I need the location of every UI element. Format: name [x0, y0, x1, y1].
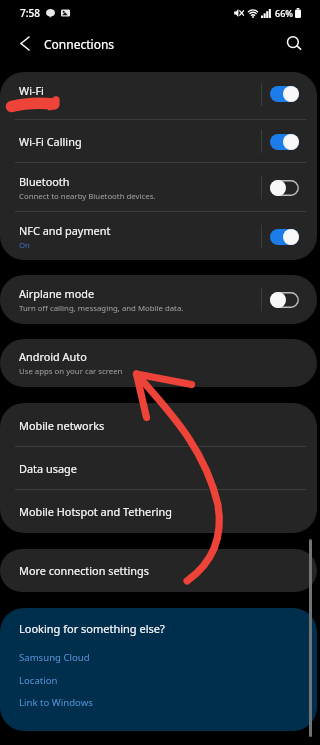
button[interactable]: Back	[8, 26, 42, 60]
staticText: Mobile Hotspot and Tethering	[19, 504, 172, 519]
button[interactable]: Mobile networks	[0, 403, 317, 447]
button[interactable]: Link to Windows	[19, 696, 93, 709]
staticText: Looking for something else?	[19, 621, 165, 636]
button[interactable]: Search	[278, 27, 310, 59]
button[interactable]: Wi-Fi Calling	[0, 120, 317, 163]
button[interactable]: Location	[19, 674, 58, 687]
staticText: Link to Windows	[19, 696, 93, 709]
staticText: Data usage	[19, 461, 77, 476]
staticText: Connect to nearby Bluetooth devices.	[19, 191, 156, 202]
button[interactable]: Bluetooth	[0, 163, 317, 212]
staticText: Samsung Cloud	[19, 651, 90, 664]
staticText: 7:58	[20, 6, 40, 20]
button[interactable]: Android Auto	[0, 339, 317, 387]
button[interactable]: Wi-Fi on	[270, 86, 299, 102]
staticText: Android Auto	[19, 349, 87, 364]
button[interactable]: Wi-Fi Calling on	[270, 134, 299, 150]
staticText: Wi-Fi Calling	[19, 134, 82, 149]
button[interactable]: Samsung Cloud	[19, 651, 90, 664]
staticText: 66%	[275, 7, 293, 19]
button[interactable]: Mobile Hotspot and Tethering	[0, 490, 317, 533]
button[interactable]: Data usage	[0, 447, 317, 490]
staticText: Use apps on your car screen	[19, 366, 123, 377]
button[interactable]: More connection settings	[0, 549, 317, 592]
button[interactable]: Airplane mode off	[270, 292, 299, 308]
staticText: NFC and payment	[19, 223, 111, 238]
staticText: Bluetooth	[19, 174, 70, 189]
staticText: On	[19, 240, 30, 251]
button[interactable]: Bluetooth off	[270, 180, 299, 196]
staticText: Turn off calling, messaging, and Mobile …	[19, 303, 184, 314]
staticText: Location	[19, 674, 58, 687]
staticText: Airplane mode	[19, 286, 95, 301]
staticText: Mobile networks	[19, 418, 105, 433]
staticText: More connection settings	[19, 563, 149, 578]
staticText: Connections	[44, 36, 115, 52]
staticText: Wi-Fi	[19, 83, 44, 98]
button[interactable]: Airplane mode	[0, 275, 317, 324]
button[interactable]: Wi-Fi	[0, 72, 317, 120]
button[interactable]: NFC and payment on	[270, 229, 299, 245]
button[interactable]: NFC and payment	[0, 212, 317, 260]
